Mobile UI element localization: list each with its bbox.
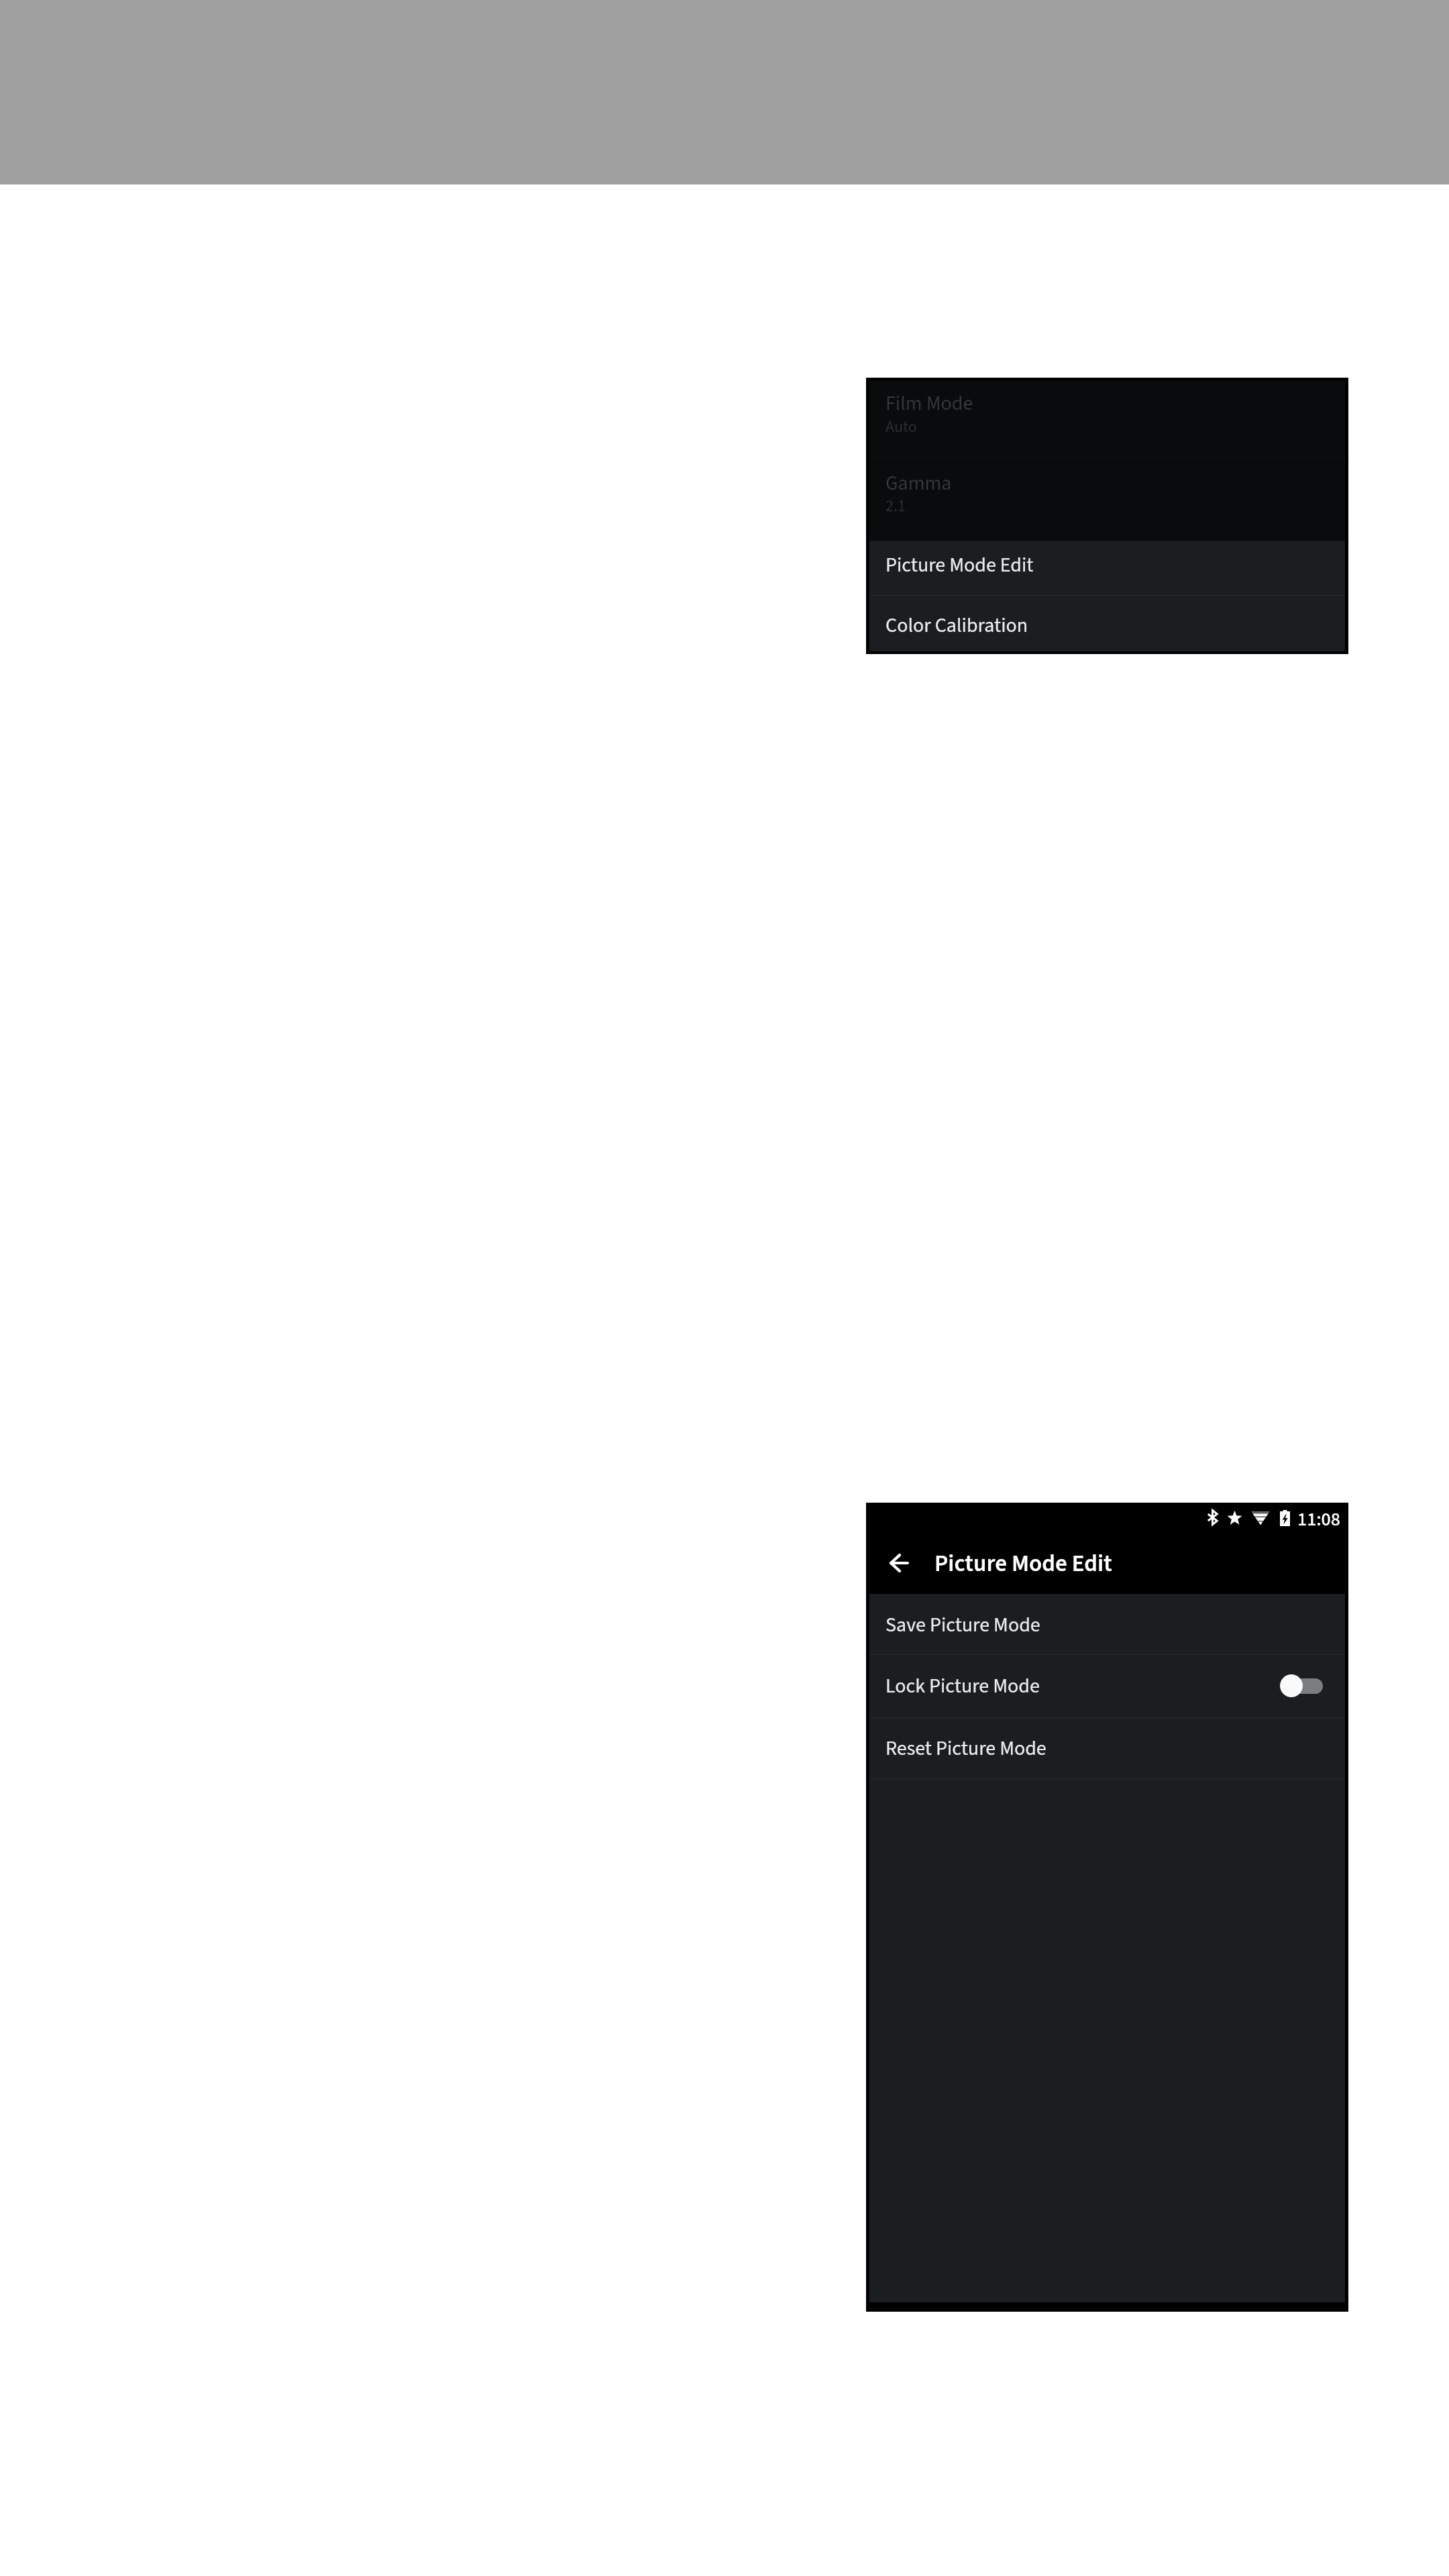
button[interactable]: Film Mode	[866, 378, 1348, 458]
staticText: Auto	[885, 415, 917, 438]
staticText: Save Picture Mode	[885, 1611, 1040, 1640]
staticText: Color Calibration	[885, 611, 1028, 640]
staticText: Picture Mode Edit	[934, 1547, 1112, 1580]
button[interactable]: Color Calibration	[866, 595, 1348, 651]
button[interactable]: Picture Mode Edit	[866, 541, 1348, 595]
staticText: Gamma	[885, 469, 952, 498]
button[interactable]: Lock Picture Mode	[866, 1654, 1348, 1717]
button[interactable]: Navigate up	[881, 1546, 916, 1580]
staticText: 11:08	[1297, 1506, 1340, 1529]
staticText: 2.1	[885, 494, 906, 517]
button[interactable]: Save Picture Mode	[866, 1594, 1348, 1654]
button[interactable]: Gamma	[866, 458, 1348, 541]
staticText: Picture Mode Edit	[885, 551, 1034, 580]
staticText: Lock Picture Mode	[885, 1672, 1040, 1701]
staticText: Film Mode	[885, 389, 973, 418]
button[interactable]: Reset Picture Mode	[866, 1717, 1348, 1778]
staticText: Reset Picture Mode	[885, 1734, 1046, 1763]
